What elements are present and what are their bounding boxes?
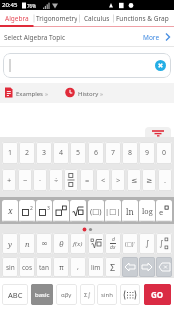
button[interactable]: y	[2, 233, 18, 254]
button[interactable]	[156, 257, 172, 277]
button[interactable]	[145, 127, 171, 138]
button[interactable]: More	[140, 27, 174, 47]
staticText: Algebra	[5, 14, 29, 23]
button[interactable]: log	[139, 200, 155, 222]
button[interactable]: ·	[33, 169, 47, 191]
staticText: Calculus	[84, 14, 110, 23]
button[interactable]: tan	[36, 257, 52, 277]
button[interactable]: e	[156, 200, 172, 222]
button[interactable]: x	[2, 200, 18, 222]
button[interactable]: sin	[2, 257, 18, 277]
staticText: History	[78, 90, 99, 98]
button[interactable]: <	[96, 169, 110, 191]
button[interactable]: 1	[2, 142, 18, 164]
button[interactable]: ∞	[36, 233, 52, 254]
button[interactable]: +	[2, 169, 16, 191]
button[interactable]: (□)'	[122, 233, 138, 254]
button[interactable]: f(x)	[70, 233, 86, 254]
button[interactable]	[64, 169, 78, 191]
button[interactable]: ABC	[2, 284, 28, 305]
button[interactable]: ≤	[127, 169, 141, 191]
button[interactable]: 4	[53, 142, 69, 164]
button[interactable]: Calculus	[81, 10, 113, 27]
staticText: ∫	[145, 239, 150, 248]
staticText: »	[100, 90, 104, 98]
button[interactable]: θ	[53, 233, 69, 254]
button[interactable]: Algebra	[0, 10, 33, 27]
button[interactable]: ,	[70, 257, 86, 277]
button[interactable]: Functions & Grap	[116, 10, 174, 27]
button[interactable]: ln	[122, 200, 138, 222]
button[interactable]: Σ∫	[80, 284, 95, 305]
button[interactable]: ≥	[142, 169, 156, 191]
staticText: 7	[111, 148, 116, 158]
staticText: 8	[128, 148, 133, 158]
button[interactable]	[155, 60, 166, 71]
button[interactable]: >	[111, 169, 125, 191]
button[interactable]: lim	[88, 257, 104, 277]
button[interactable]: 0	[156, 142, 172, 164]
staticText: 3	[47, 205, 50, 212]
staticText: More	[143, 33, 160, 42]
button[interactable]	[120, 284, 140, 305]
staticText: |□|	[105, 206, 121, 216]
button[interactable]: 5	[70, 142, 86, 164]
staticText: ABC	[8, 290, 23, 300]
button[interactable]: 8	[122, 142, 138, 164]
staticText: ≤	[131, 176, 138, 185]
staticText: 3	[42, 148, 47, 158]
button[interactable]: cos	[19, 257, 35, 277]
staticText: 1	[8, 148, 13, 158]
button[interactable]: 9	[139, 142, 155, 164]
button[interactable]: αβγ	[56, 284, 77, 305]
button[interactable]: 3	[36, 200, 52, 222]
button[interactable]: d	[105, 233, 121, 254]
staticText: Functions & Grap	[116, 14, 169, 23]
button[interactable]	[139, 257, 155, 277]
staticText: Σ	[110, 261, 116, 273]
staticText: ln	[126, 206, 134, 217]
button[interactable]: Trigonometry	[36, 10, 77, 27]
staticText: .	[164, 175, 167, 185]
button[interactable]: 7	[105, 142, 121, 164]
staticText: log	[142, 206, 153, 216]
button[interactable]: .	[158, 169, 172, 191]
staticText: (□)'	[125, 240, 135, 247]
staticText: ÷	[54, 175, 59, 185]
button[interactable]	[70, 200, 86, 222]
button[interactable]: Σ	[105, 257, 121, 277]
button[interactable]: (□)	[88, 200, 104, 222]
button[interactable]	[2, 83, 52, 103]
button[interactable]: 2	[19, 200, 35, 222]
button[interactable]: 2	[19, 142, 35, 164]
button[interactable]: GO	[144, 284, 171, 305]
staticText: ∫	[159, 239, 164, 248]
button[interactable]: |□|	[105, 200, 121, 222]
staticText: n	[25, 239, 30, 249]
button[interactable]: π	[53, 257, 69, 277]
button[interactable]	[88, 233, 104, 254]
button[interactable]: ÷	[49, 169, 63, 191]
staticText: ,	[77, 262, 79, 272]
button[interactable]: n	[19, 233, 35, 254]
staticText: ∞	[41, 239, 48, 248]
button[interactable]: ∫	[156, 233, 172, 254]
staticText: Examples	[16, 90, 43, 98]
staticText: basic	[35, 291, 50, 299]
button[interactable]: basic	[31, 284, 53, 305]
staticText: sinh	[101, 291, 113, 299]
button[interactable]	[62, 83, 110, 103]
staticText: ≥	[146, 176, 153, 185]
staticText: Trigonometry	[36, 14, 77, 23]
button[interactable]	[3, 53, 171, 78]
button[interactable]: sinh	[97, 284, 117, 305]
staticText: y	[8, 239, 12, 249]
button[interactable]: =	[80, 169, 94, 191]
button[interactable]: 6	[88, 142, 104, 164]
button[interactable]: ∫	[139, 233, 155, 254]
button[interactable]	[53, 200, 69, 222]
button[interactable]: 3	[36, 142, 52, 164]
button[interactable]	[122, 257, 138, 277]
button[interactable]: −	[18, 169, 32, 191]
staticText: +	[7, 175, 12, 185]
